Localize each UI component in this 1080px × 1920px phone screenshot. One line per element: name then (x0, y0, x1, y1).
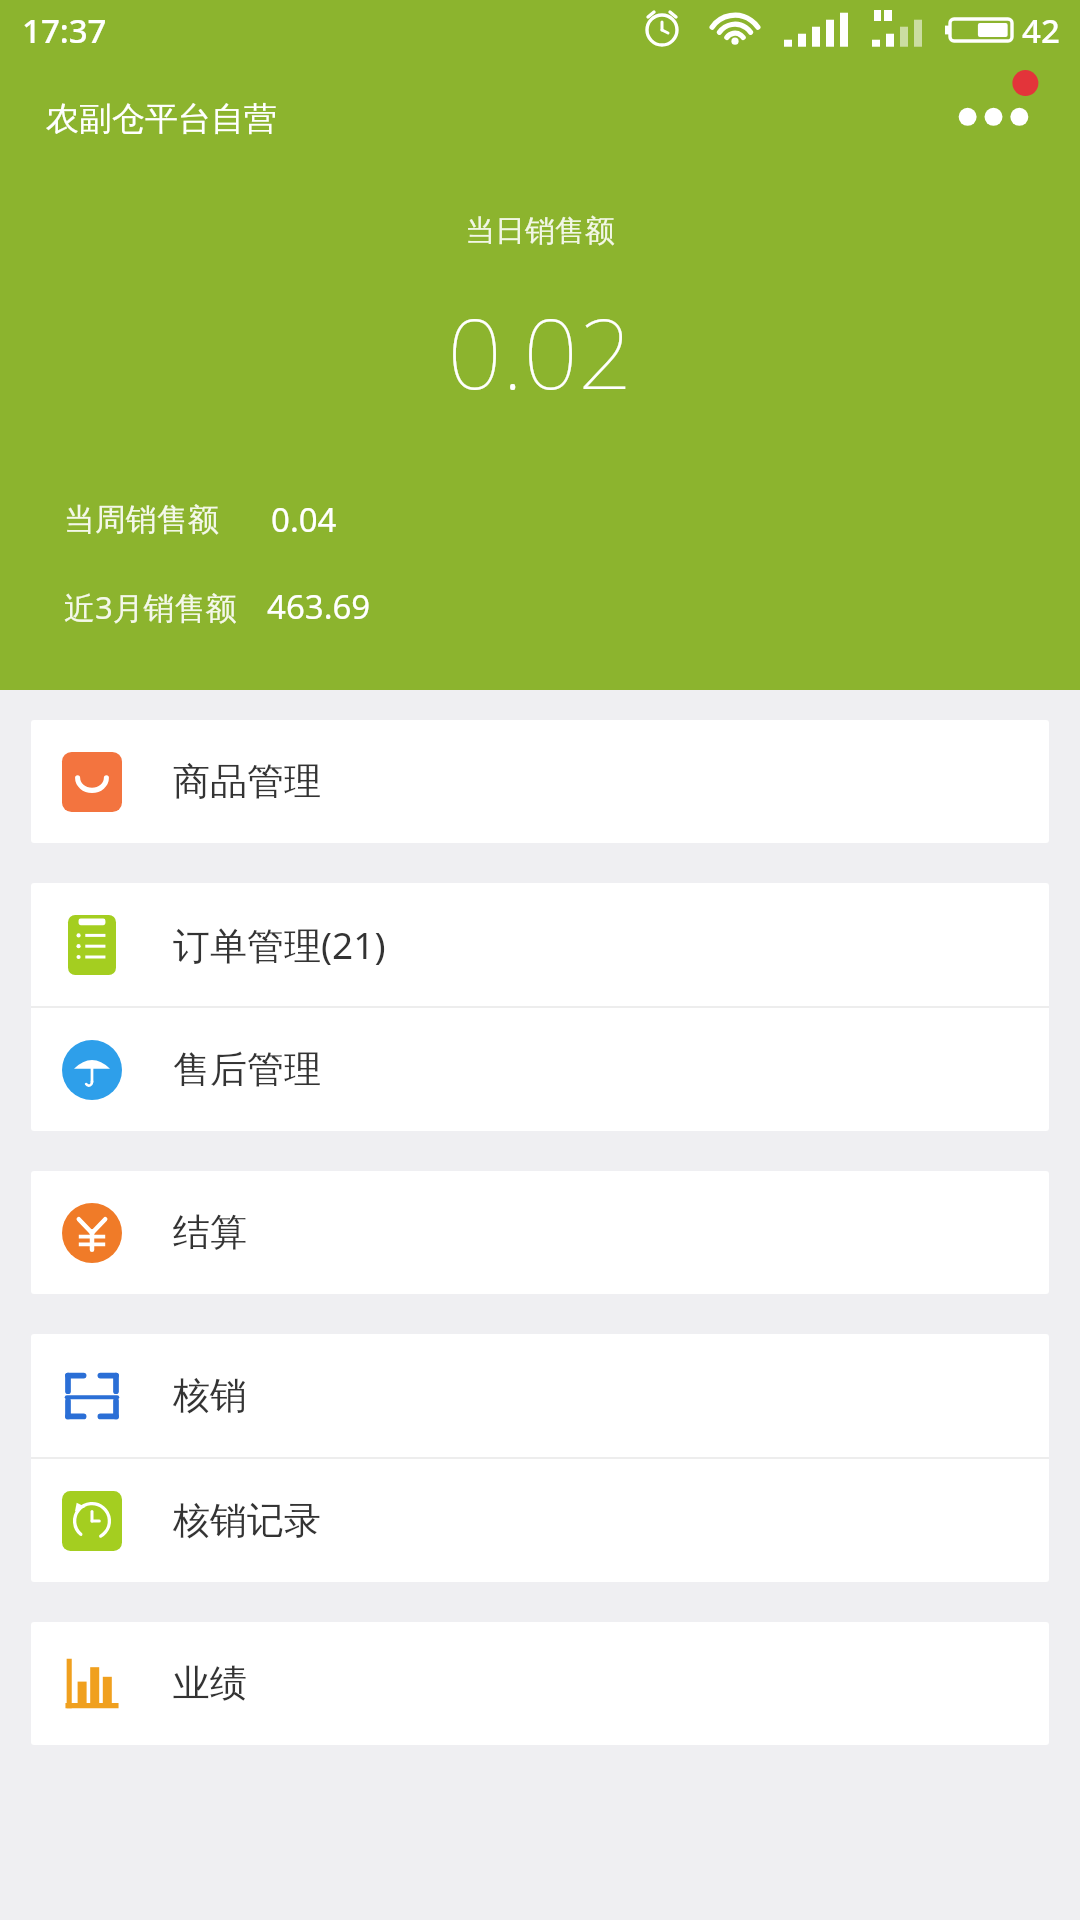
staticText: 0.02 (447, 286, 633, 417)
staticText: 核销 (173, 1372, 247, 1419)
button[interactable]: 核销记录 (31, 1459, 1049, 1582)
staticText: 农副仓平台自营 (46, 98, 277, 140)
staticText: 0.04 (271, 497, 337, 542)
staticText: 463.69 (267, 584, 371, 629)
button[interactable]: 核销 (31, 1334, 1049, 1457)
staticText: 42 (1022, 8, 1060, 53)
staticText: 结算 (173, 1209, 247, 1256)
staticText: 近3月销售额 (64, 586, 237, 628)
staticText: 17:37 (22, 8, 107, 53)
staticText: 当日销售额 (465, 212, 615, 250)
button[interactable]: 售后管理 (31, 1008, 1049, 1131)
staticText: 订单管理(21) (173, 919, 386, 970)
button[interactable]: 商品管理 (31, 720, 1049, 843)
button[interactable]: More options (944, 66, 1054, 156)
staticText: 核销记录 (173, 1497, 321, 1544)
button[interactable]: 业绩 (31, 1622, 1049, 1745)
staticText: 当周销售额 (64, 500, 219, 539)
staticText: 业绩 (173, 1660, 247, 1707)
staticText: 商品管理 (173, 758, 321, 805)
button[interactable]: 结算 (31, 1171, 1049, 1294)
staticText: 售后管理 (173, 1046, 321, 1093)
button[interactable]: 订单管理(21) (31, 883, 1049, 1006)
